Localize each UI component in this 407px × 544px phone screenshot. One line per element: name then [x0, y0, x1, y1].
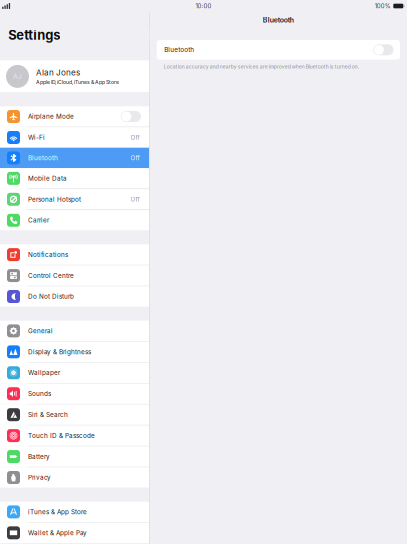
button[interactable]: Touch ID & Passcode	[0, 425, 149, 446]
staticText: 100%	[375, 2, 391, 10]
staticText: Bluetooth	[28, 154, 58, 162]
button[interactable]: Control Centre	[0, 265, 149, 286]
staticText: Off	[130, 154, 139, 162]
staticText: Bluetooth	[164, 46, 194, 54]
button[interactable]: Wallet & Apple Pay	[0, 523, 149, 543]
staticText: Sounds	[28, 390, 51, 398]
staticText: Battery	[28, 453, 50, 460]
staticText: AJ	[13, 72, 22, 80]
button[interactable]: Mobile Data	[0, 168, 149, 188]
button[interactable]: Bluetooth	[157, 40, 400, 60]
staticText: Privacy	[28, 474, 51, 481]
button[interactable]: Privacy	[0, 467, 149, 488]
staticText: Wi-Fi	[28, 134, 45, 141]
staticText: Do Not Disturb	[28, 293, 74, 300]
button[interactable]: Sounds	[0, 383, 149, 404]
staticText: Off	[130, 134, 139, 141]
staticText: Personal Hotspot	[28, 195, 81, 203]
staticText: Wallpaper	[28, 369, 60, 377]
staticText: Control Centre	[28, 272, 74, 279]
staticText: General	[28, 327, 53, 335]
staticText: Display & Brightness	[28, 348, 91, 356]
staticText: Siri & Search	[28, 411, 68, 418]
button[interactable]: Wi-Fi	[0, 127, 149, 148]
button[interactable]: Display & Brightness	[0, 342, 149, 362]
button[interactable]: iTunes & App Store	[0, 502, 149, 522]
button[interactable]: Notifications	[0, 244, 149, 265]
staticText: Carrier	[28, 216, 49, 224]
button[interactable]: Airplane Mode	[0, 106, 149, 127]
button[interactable]: Carrier	[0, 210, 149, 230]
button[interactable]: Do Not Disturb	[0, 286, 149, 307]
staticText: Notifications	[28, 251, 68, 258]
staticText: Mobile Data	[28, 174, 67, 182]
staticText: Wallet & Apple Pay	[28, 529, 87, 537]
staticText: Airplane Mode	[28, 113, 74, 120]
staticText: Location accuracy and nearby services ar…	[164, 64, 359, 70]
staticText: Bluetooth	[263, 16, 294, 24]
button[interactable]: Bluetooth	[0, 148, 149, 168]
button[interactable]: General	[0, 321, 149, 341]
staticText: Apple ID, iCloud, iTunes & App Store	[36, 79, 119, 85]
staticText: Alan Jones	[36, 68, 80, 77]
button[interactable]: AJ	[0, 60, 149, 92]
button[interactable]: Battery	[0, 446, 149, 467]
staticText: Touch ID & Passcode	[28, 432, 95, 439]
button[interactable]: Personal Hotspot	[0, 189, 149, 209]
staticText: 10:00	[195, 2, 211, 10]
button[interactable]: Wallpaper	[0, 362, 149, 383]
staticText: Off	[130, 196, 139, 203]
staticText: iTunes & App Store	[28, 508, 87, 516]
button[interactable]: Siri & Search	[0, 404, 149, 425]
staticText: Settings	[8, 27, 60, 43]
